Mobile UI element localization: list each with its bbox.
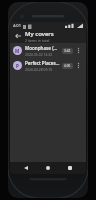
staticText: 4:01 — [13, 23, 21, 28]
button[interactable]: Home — [42, 162, 54, 174]
staticText: M — [15, 48, 20, 54]
button[interactable]: Back — [20, 162, 32, 174]
staticText: 3:42 — [64, 49, 71, 53]
button[interactable]: M — [10, 43, 86, 58]
staticText: 2024-05-02 14:32 — [25, 52, 53, 57]
button[interactable]: More options — [74, 46, 83, 55]
staticText: 2 items in total — [25, 38, 50, 43]
staticText: Perfect Places (Cover).wav — [25, 60, 60, 66]
staticText: My covers — [25, 30, 54, 38]
button[interactable]: Recent apps — [64, 162, 76, 174]
staticText: 4:05 — [64, 64, 71, 68]
button[interactable]: 4:05 — [62, 63, 73, 69]
button[interactable]: P — [10, 58, 86, 73]
button[interactable]: More options — [74, 61, 83, 70]
button[interactable]: 3:42 — [62, 48, 73, 54]
button[interactable]: Back — [12, 30, 24, 42]
staticText: Moonphase (Cover).wav — [25, 45, 60, 51]
staticText: 2024-04-28 09:10 — [25, 67, 53, 72]
staticText: P — [16, 63, 19, 69]
